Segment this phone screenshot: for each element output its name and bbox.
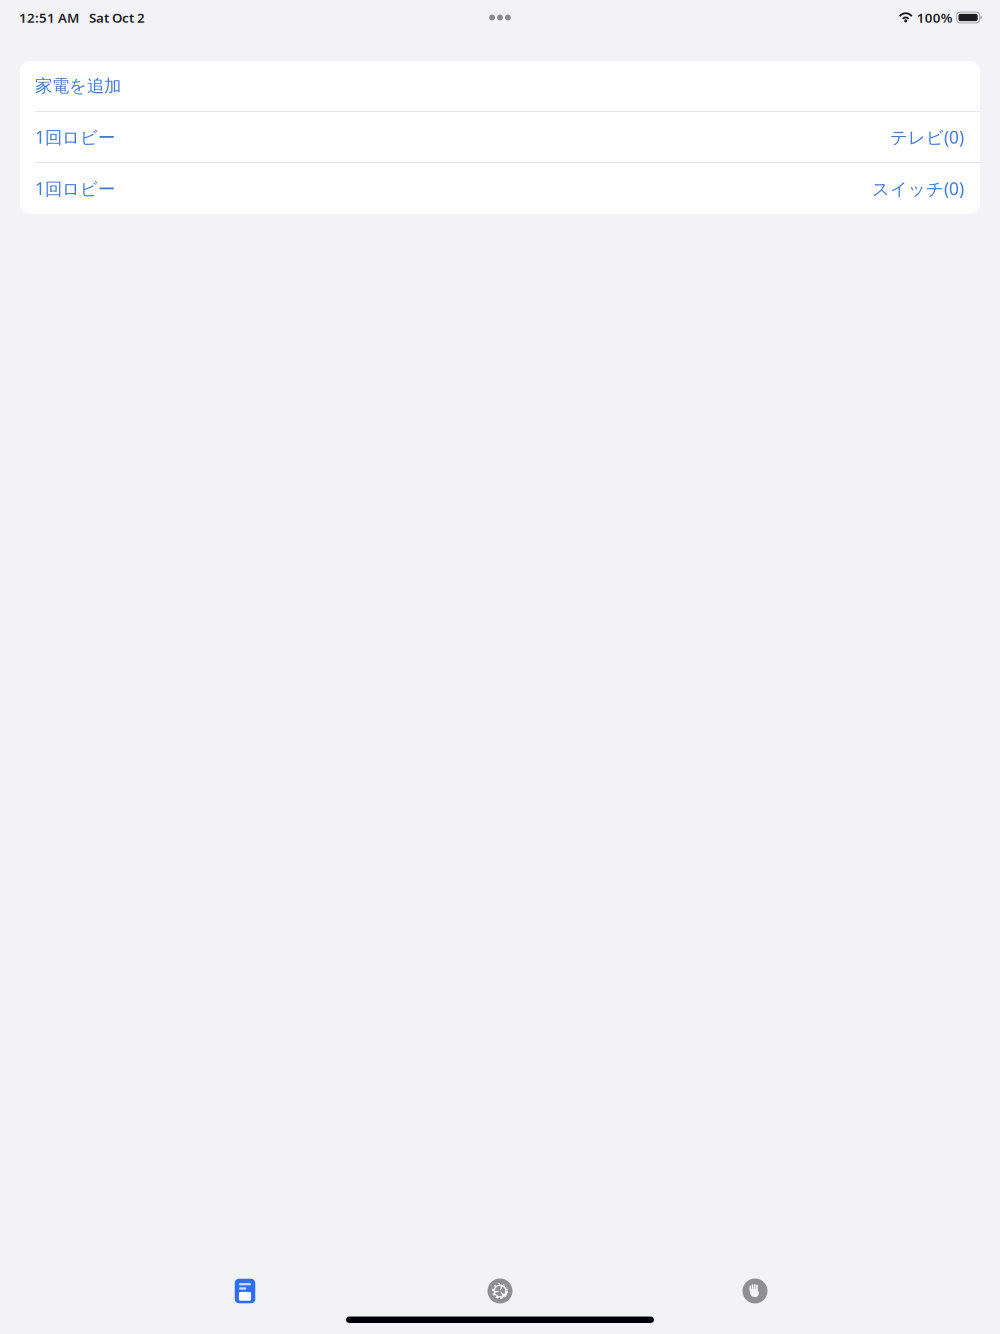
staticText: 1回ロビー — [35, 177, 115, 200]
staticText: 12:51 AM — [19, 9, 79, 26]
button[interactable]: 家電を追加 — [20, 61, 980, 112]
staticText: 1回ロビー — [35, 125, 115, 148]
button[interactable]: 1回ロビー — [20, 163, 980, 214]
button[interactable]: 1回ロビー — [20, 112, 980, 163]
staticText: テレビ(0) — [890, 125, 964, 148]
button[interactable]: Devices — [206, 1266, 284, 1316]
staticText: スイッチ(0) — [872, 177, 964, 200]
button[interactable]: Permissions — [716, 1266, 794, 1316]
button[interactable]: Settings — [461, 1266, 539, 1316]
staticText: 100% — [917, 9, 953, 26]
staticText: 家電を追加 — [35, 75, 121, 97]
staticText: Sat Oct 2 — [89, 9, 145, 26]
